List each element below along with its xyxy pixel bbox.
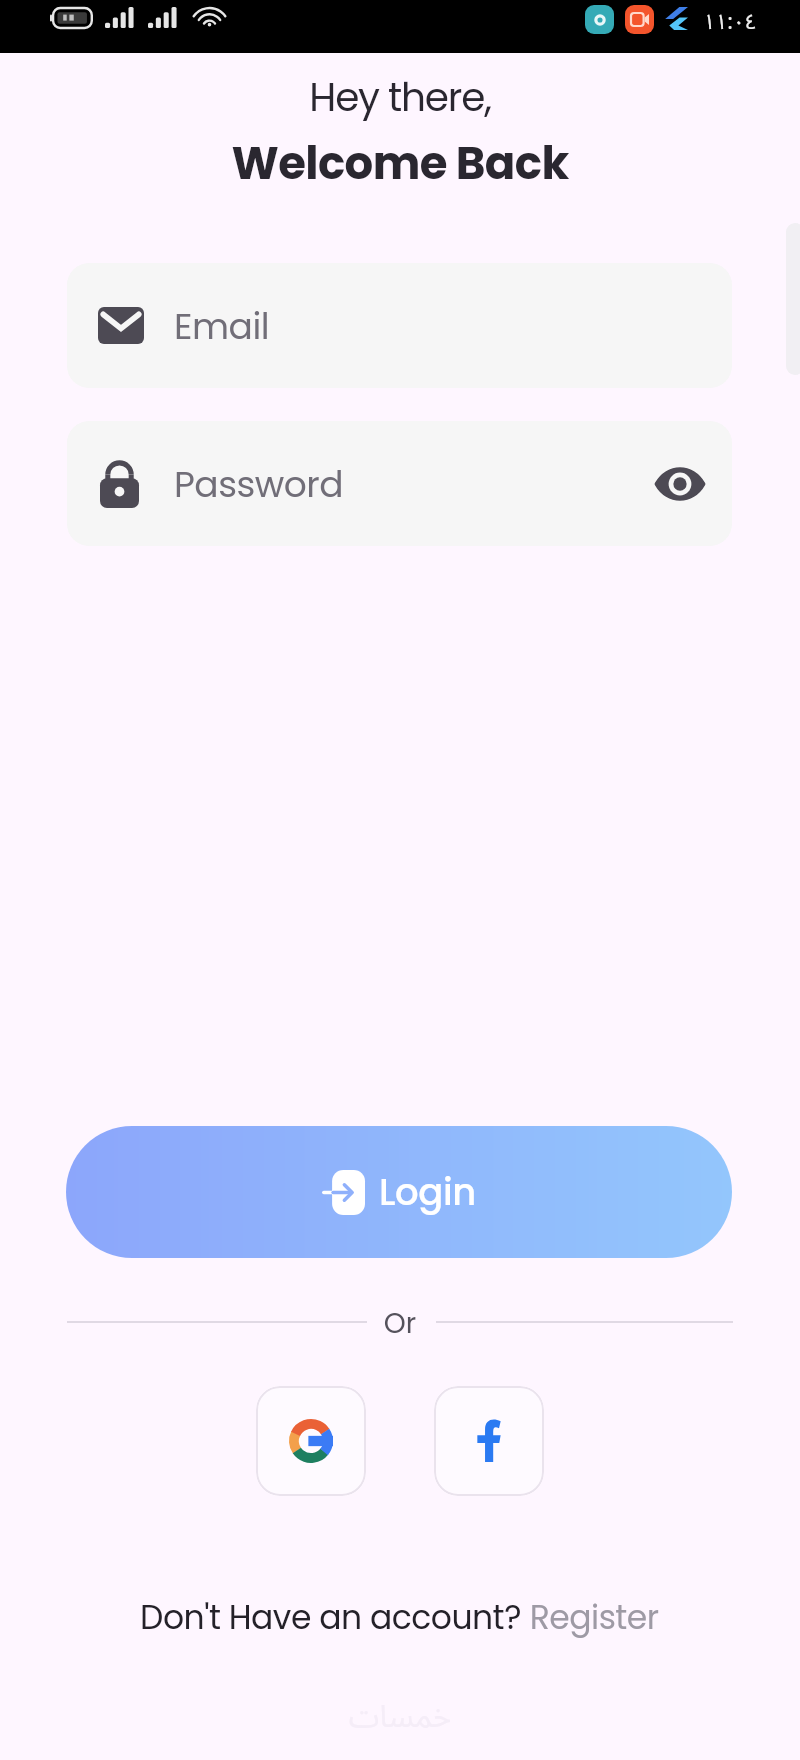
button[interactable]: Login (66, 1126, 732, 1258)
staticText: Don't Have an account? (140, 1594, 521, 1640)
staticText: Register (521, 1594, 659, 1640)
staticText: ١١:٠٤ (700, 0, 760, 44)
staticText: Hey there, (0, 70, 800, 125)
staticText: Login (379, 1166, 476, 1218)
staticText: Email (174, 301, 270, 351)
button[interactable]: Password (67, 421, 732, 546)
staticText: Or (0, 1304, 800, 1343)
button[interactable]: Register (521, 1594, 659, 1640)
button[interactable]: Sign in with Facebook (434, 1386, 544, 1496)
staticText: Password (174, 459, 344, 509)
staticText: Welcome Back (0, 132, 800, 195)
button[interactable]: Sign in with Google (256, 1386, 366, 1496)
button[interactable]: Email (67, 263, 732, 388)
button[interactable]: Show password (650, 454, 710, 514)
